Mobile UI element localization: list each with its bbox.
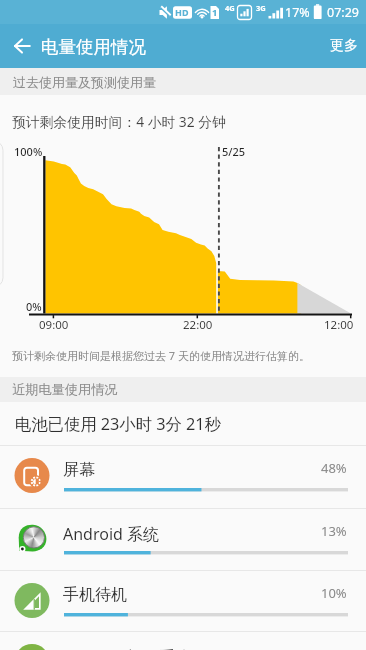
button[interactable]: 更多 — [318, 24, 366, 68]
button[interactable]: Android 操作系统 — [0, 631, 366, 650]
staticText: 电量使用情况 — [41, 36, 146, 58]
staticText: Android 操作系统 — [63, 646, 192, 650]
staticText: 09:00 — [39, 317, 69, 333]
button[interactable]: Back — [0, 24, 44, 68]
staticText: 48% — [321, 459, 347, 477]
staticText: 100% — [14, 144, 43, 159]
staticText: 0% — [26, 299, 42, 314]
button[interactable]: 手机待机 — [0, 570, 366, 632]
button[interactable]: Android 系统 — [0, 508, 366, 570]
staticText: 13% — [321, 522, 347, 540]
staticText: 屏幕 — [63, 460, 95, 480]
staticText: 4G — [225, 3, 235, 13]
staticText: Android 系统 — [63, 523, 160, 545]
staticText: 近期电量使用情况 — [12, 381, 118, 398]
staticText: 预计剩余使用时间是根据您过去 7 天的使用情况进行估算的。 — [12, 348, 311, 363]
staticText: 1 — [212, 6, 218, 19]
staticText: 22:00 — [183, 317, 213, 333]
staticText: 5/25 — [222, 144, 246, 159]
staticText: 07:29 — [327, 4, 359, 21]
staticText: 过去使用量及预测使用量 — [13, 74, 156, 90]
staticText: 手机待机 — [63, 585, 127, 605]
staticText: 10% — [321, 584, 347, 602]
staticText: 更多 — [330, 37, 358, 55]
staticText: 预计剩余使用时间：4 小时 32 分钟 — [12, 112, 226, 131]
staticText: HD — [175, 6, 189, 18]
staticText: 电池已使用 23小时 3分 21秒 — [15, 413, 221, 435]
staticText: 17% — [285, 4, 310, 21]
staticText: 3G — [256, 3, 266, 13]
button[interactable]: 屏幕 — [0, 445, 366, 507]
staticText: 12:00 — [324, 317, 354, 333]
